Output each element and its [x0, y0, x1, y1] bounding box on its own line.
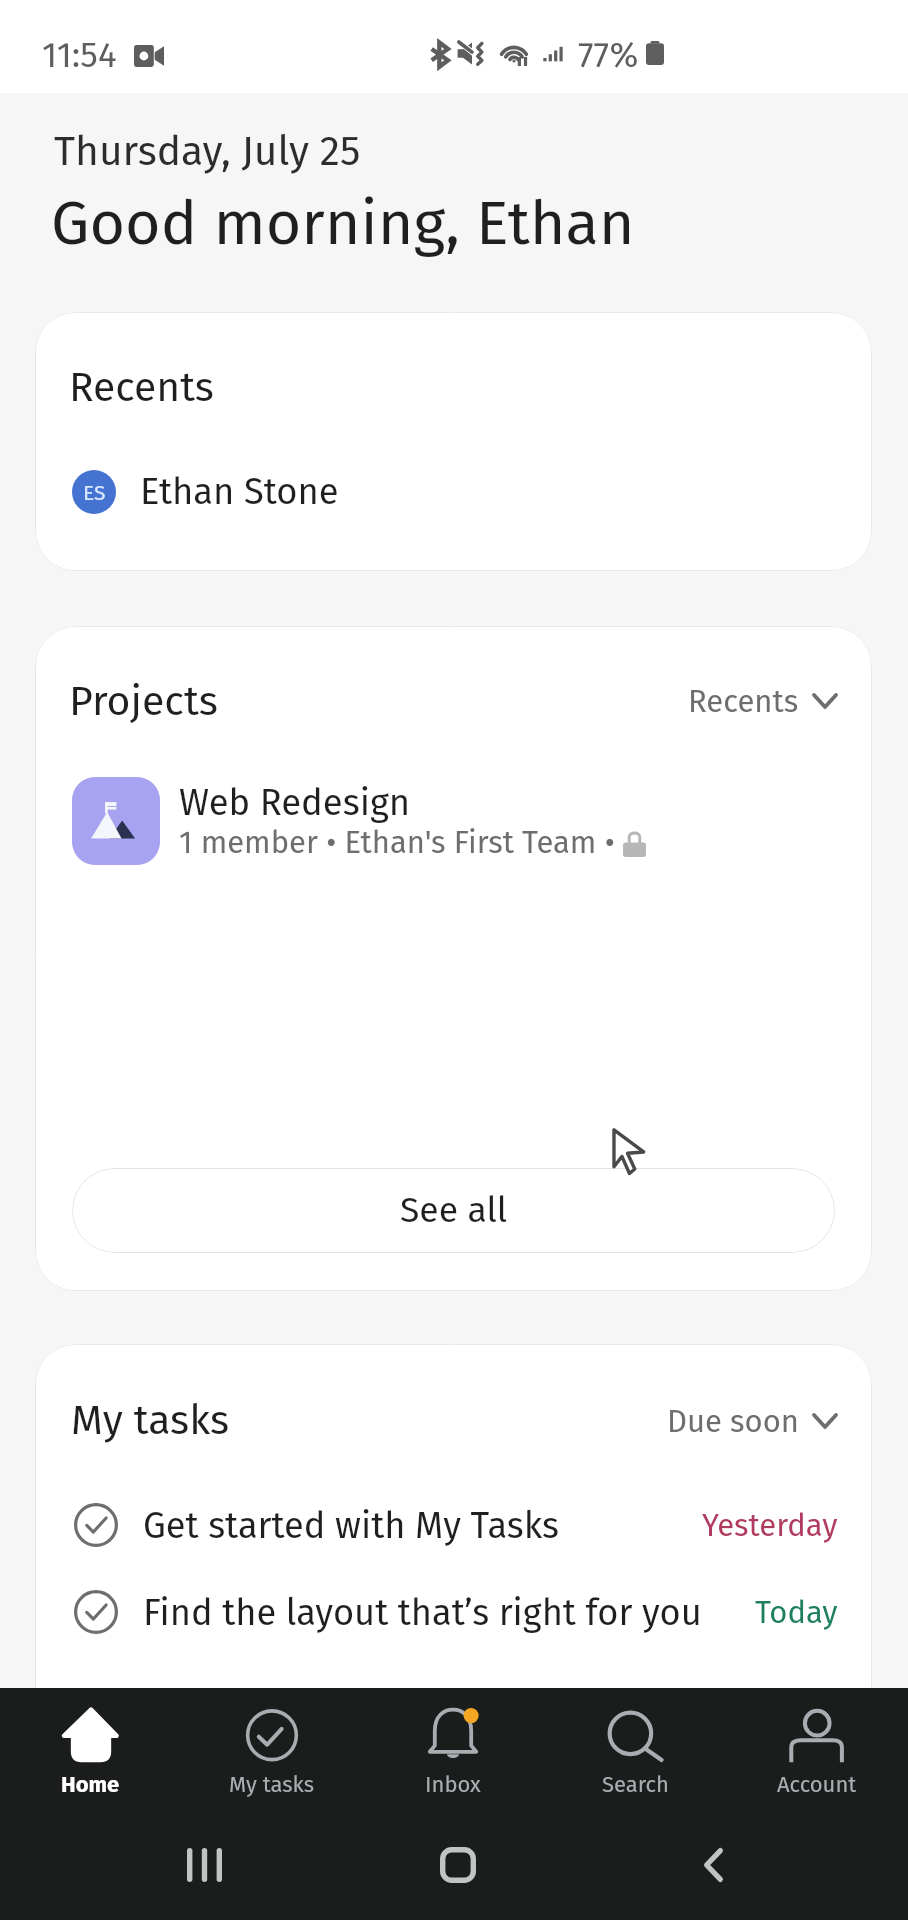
button[interactable]: My tasks [181, 1688, 362, 1806]
staticText: Get started with My Tasks [143, 1504, 559, 1547]
staticText: Recents [688, 683, 799, 720]
button[interactable]: Due soon [667, 1393, 872, 1449]
staticText: Projects [69, 677, 218, 726]
button[interactable]: Inbox [362, 1688, 544, 1806]
staticText: Ethan Stone [140, 470, 339, 514]
staticText: Web Redesign [179, 781, 411, 825]
button[interactable]: Get started with My Tasks [35, 1490, 872, 1560]
button[interactable]: Search [544, 1688, 726, 1806]
button[interactable]: Find the layout that’s right for you [35, 1577, 872, 1647]
button[interactable] [35, 771, 872, 871]
button[interactable]: Home [0, 1688, 181, 1806]
button[interactable]: Recents [688, 673, 872, 729]
button[interactable]: Back [673, 1825, 753, 1905]
staticText: My tasks [71, 1396, 230, 1445]
staticText: 77% [578, 34, 639, 76]
staticText: ES [83, 480, 106, 505]
button[interactable]: Home [418, 1825, 498, 1905]
button[interactable]: Recent apps [164, 1825, 244, 1905]
button[interactable]: See all [72, 1168, 835, 1253]
staticText: 11:54 [42, 34, 117, 76]
staticText: Yesterday [702, 1507, 838, 1544]
staticText: Account [777, 1771, 857, 1797]
staticText: Find the layout that’s right for you [143, 1591, 702, 1634]
staticText: Recents [69, 363, 214, 412]
staticText: Thursday, July 25 [54, 127, 361, 176]
staticText: See all [400, 1189, 508, 1232]
staticText: 1 member • Ethan's First Team • [179, 824, 615, 861]
staticText: Search [602, 1771, 669, 1797]
staticText: Home [61, 1771, 120, 1797]
staticText: Due soon [667, 1403, 799, 1440]
staticText: Today [755, 1594, 838, 1631]
staticText: My tasks [229, 1771, 315, 1797]
button[interactable]: Account [726, 1688, 908, 1806]
staticText: Inbox [425, 1771, 481, 1797]
staticText: Good morning, Ethan [51, 187, 635, 260]
button[interactable]: ES [35, 456, 872, 528]
